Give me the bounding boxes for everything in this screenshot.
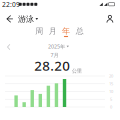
button[interactable]: 周 (33, 27, 46, 39)
staticText: 年 (62, 26, 70, 36)
button[interactable]: 游泳 (16, 12, 40, 26)
button[interactable]: Previous year (4, 41, 13, 53)
staticText: 15 (109, 81, 113, 86)
button[interactable]: 月 (46, 27, 59, 39)
staticText: 10 (109, 89, 113, 94)
staticText: 总 (76, 26, 84, 36)
staticText: 28.20 (34, 57, 70, 74)
staticText: 5 (110, 97, 112, 102)
staticText: 22:09 (2, 0, 20, 9)
button[interactable]: 总 (73, 27, 86, 39)
staticText: 游泳 (18, 14, 34, 24)
staticText: 20 (109, 73, 113, 79)
staticText: 公里 (72, 68, 82, 74)
staticText: 周 (35, 26, 43, 36)
staticText: 7月 (50, 51, 58, 59)
button[interactable]: Profile (104, 12, 116, 25)
staticText: 月 (49, 26, 57, 36)
staticText: 2025年 (48, 43, 65, 50)
button[interactable]: Back (3, 12, 16, 25)
staticText: 0 (110, 104, 112, 110)
button[interactable]: 年 (59, 27, 72, 39)
